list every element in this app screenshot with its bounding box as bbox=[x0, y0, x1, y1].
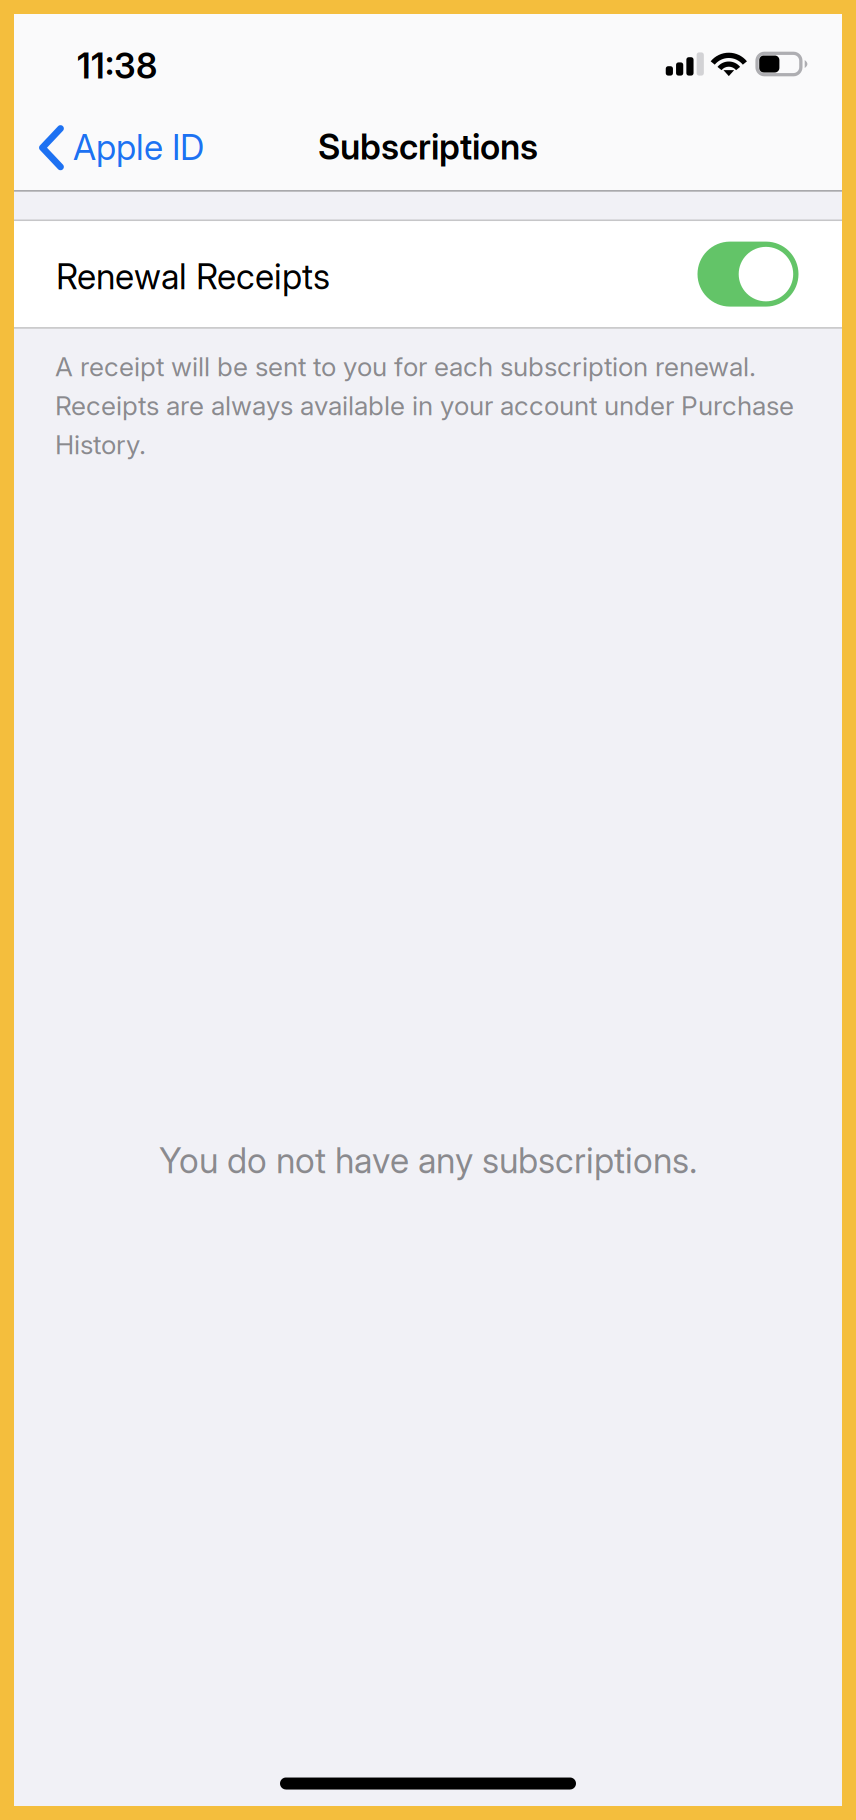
staticText: You do not have any subscriptions. bbox=[159, 1140, 697, 1181]
button[interactable]: Apple ID bbox=[14, 114, 222, 190]
staticText: Apple ID bbox=[73, 126, 204, 168]
staticText: 11:38 bbox=[77, 45, 157, 87]
button[interactable]: Renewal Receipts bbox=[14, 221, 842, 327]
staticText: Renewal Receipts bbox=[56, 256, 330, 297]
staticText: Subscriptions bbox=[318, 126, 538, 168]
staticText: A receipt will be sent to you for each s… bbox=[55, 351, 794, 461]
